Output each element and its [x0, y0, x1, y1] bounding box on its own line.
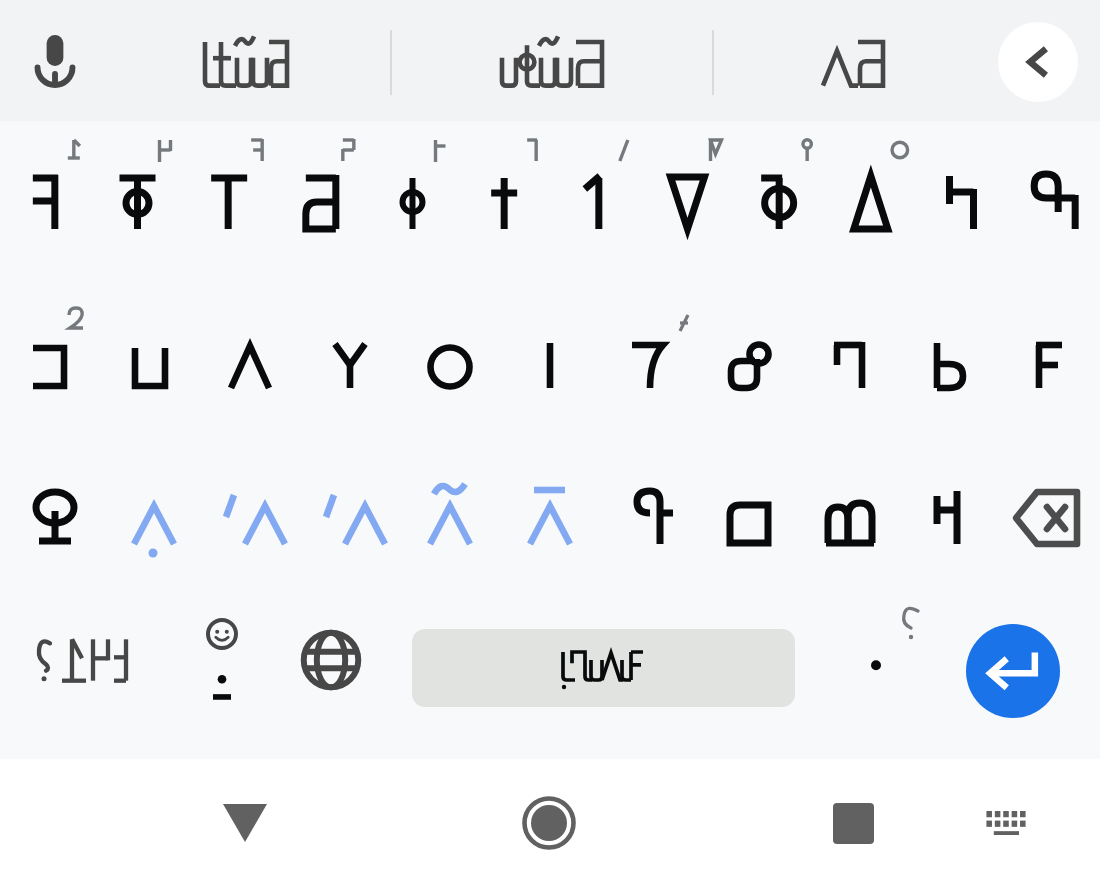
button[interactable]: Change keyboard [956, 773, 1056, 873]
button[interactable] [394, 0, 710, 121]
button[interactable]: Key [458, 144, 549, 260]
button[interactable]: Key [0, 144, 91, 260]
button[interactable]: Key [1008, 144, 1099, 260]
button[interactable]: Voice input [8, 13, 102, 107]
button[interactable]: Key [275, 144, 366, 260]
button[interactable]: Key [733, 144, 824, 260]
button[interactable] [716, 0, 990, 121]
button[interactable] [104, 0, 388, 121]
button[interactable]: Period [826, 607, 926, 713]
button[interactable]: Key [800, 461, 900, 577]
button[interactable]: Key [642, 144, 733, 260]
button[interactable]: Key [400, 310, 500, 426]
button[interactable]: Key [400, 461, 500, 577]
button[interactable]: Key [100, 310, 200, 426]
button[interactable]: Key [92, 144, 183, 260]
button[interactable]: Space [412, 629, 795, 707]
button[interactable]: Emoji [172, 607, 272, 713]
button[interactable]: Key [200, 461, 300, 577]
button[interactable]: Key [0, 461, 100, 577]
button[interactable]: Key [300, 310, 400, 426]
button[interactable]: Key [300, 461, 400, 577]
button[interactable]: Key [200, 310, 300, 426]
button[interactable]: Key [900, 310, 1000, 426]
button[interactable]: Key [500, 461, 600, 577]
button[interactable]: Key [183, 144, 274, 260]
button[interactable]: Key [900, 461, 1000, 577]
button[interactable]: Recent apps [803, 773, 903, 873]
button[interactable]: Key [700, 461, 800, 577]
button[interactable]: Key [825, 144, 916, 260]
button[interactable]: Key [700, 310, 800, 426]
button[interactable]: Symbols [20, 607, 150, 713]
button[interactable]: Collapse suggestions [998, 22, 1078, 102]
button[interactable]: Key [550, 144, 641, 260]
button[interactable]: Key [367, 144, 458, 260]
button[interactable]: Key [1000, 310, 1100, 426]
button[interactable]: Switch language [281, 607, 381, 713]
button[interactable]: Home [499, 773, 599, 873]
button[interactable]: Key [600, 461, 700, 577]
button[interactable]: Key [500, 310, 600, 426]
button[interactable]: Enter [966, 624, 1060, 718]
button[interactable]: Key [800, 310, 900, 426]
button[interactable]: Key [917, 144, 1008, 260]
button[interactable]: Key [0, 310, 100, 426]
button[interactable]: Backspace [1000, 461, 1100, 577]
button[interactable]: Hide keyboard [195, 773, 295, 873]
button[interactable]: Key [600, 310, 700, 426]
button[interactable]: Key [100, 461, 200, 577]
